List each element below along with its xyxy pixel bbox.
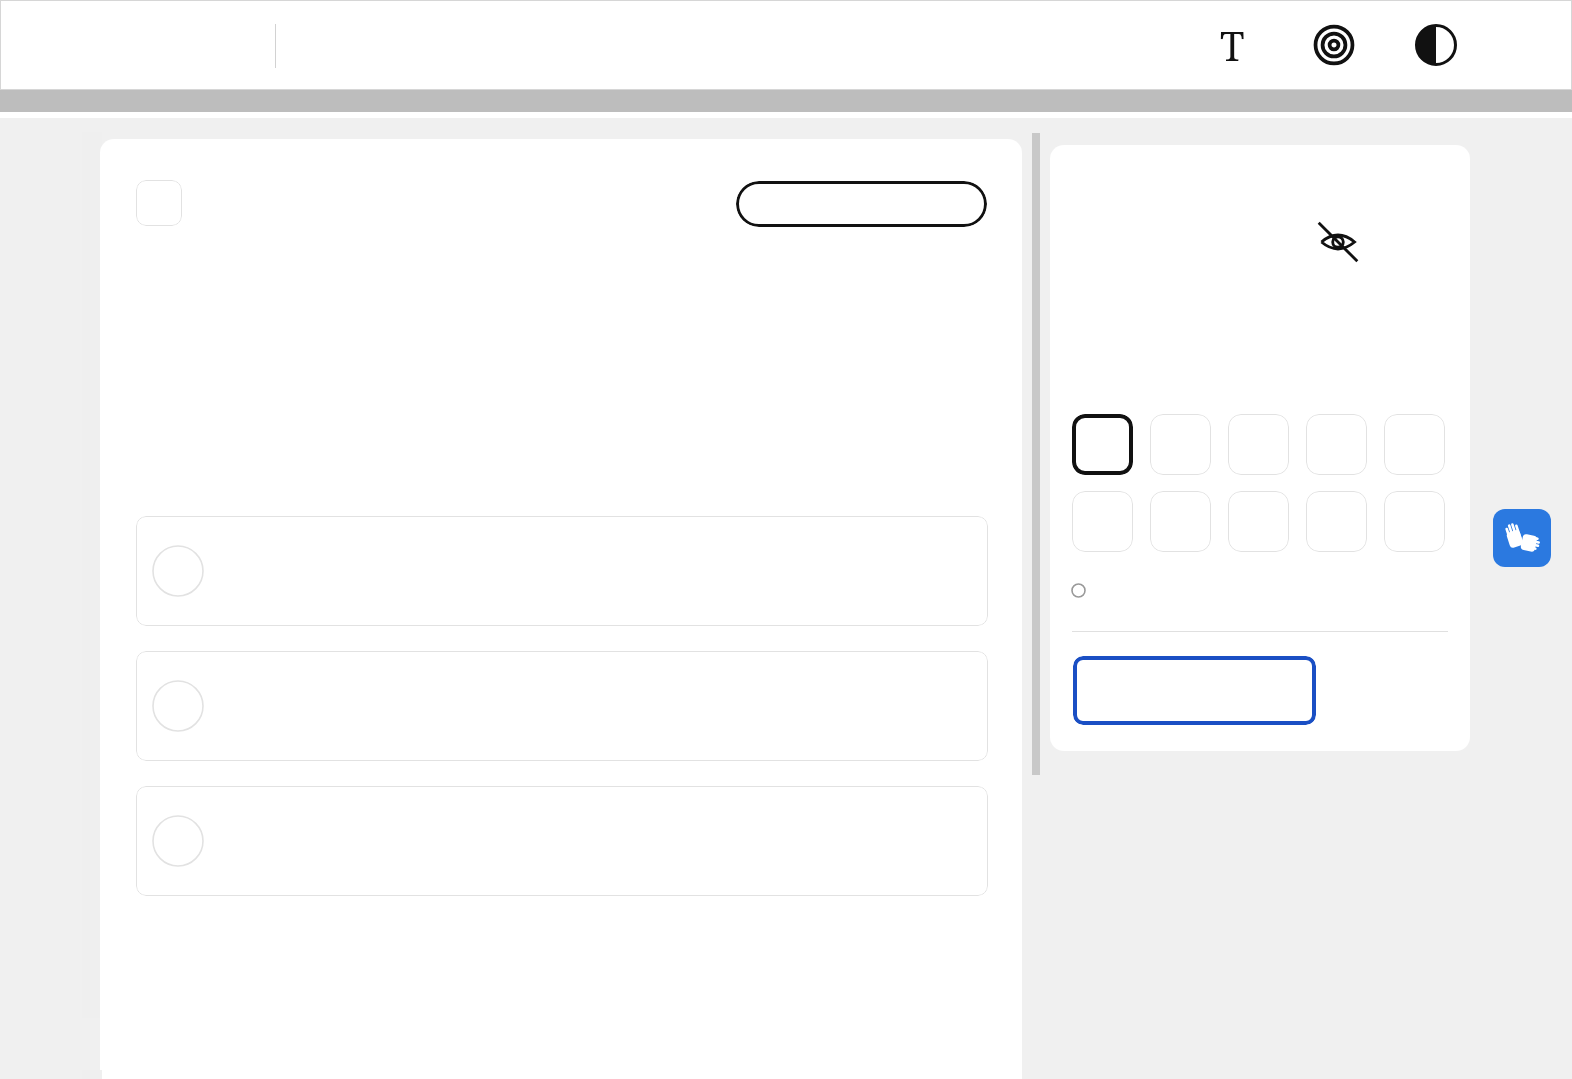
button[interactable]: Toggle [136,180,182,226]
button[interactable] [136,651,988,761]
button[interactable]: Confirm [1073,656,1316,725]
button[interactable]: Accessibility sign language [1493,509,1551,567]
button[interactable]: Swatch 9 [1306,491,1367,552]
button[interactable]: Contrast [1408,17,1464,73]
button[interactable]: Swatch 5 [1384,414,1445,475]
button[interactable] [136,786,988,896]
button[interactable]: Swatch 8 [1228,491,1289,552]
button[interactable]: Action [736,181,987,227]
button[interactable]: Swatch 7 [1150,491,1211,552]
button[interactable]: Swatch 6 [1072,491,1133,552]
button[interactable]: Swatch 10 [1384,491,1445,552]
button[interactable]: Text size [1204,17,1260,73]
button[interactable]: Swatch 4 [1306,414,1367,475]
staticText: T [1220,18,1245,72]
button[interactable] [136,516,988,626]
button[interactable]: Swatch 3 [1228,414,1289,475]
button[interactable]: Hide [1312,216,1364,268]
button[interactable]: Focus [1306,17,1362,73]
button[interactable]: Swatch 2 [1150,414,1211,475]
button[interactable]: Swatch 1 [1072,414,1133,475]
